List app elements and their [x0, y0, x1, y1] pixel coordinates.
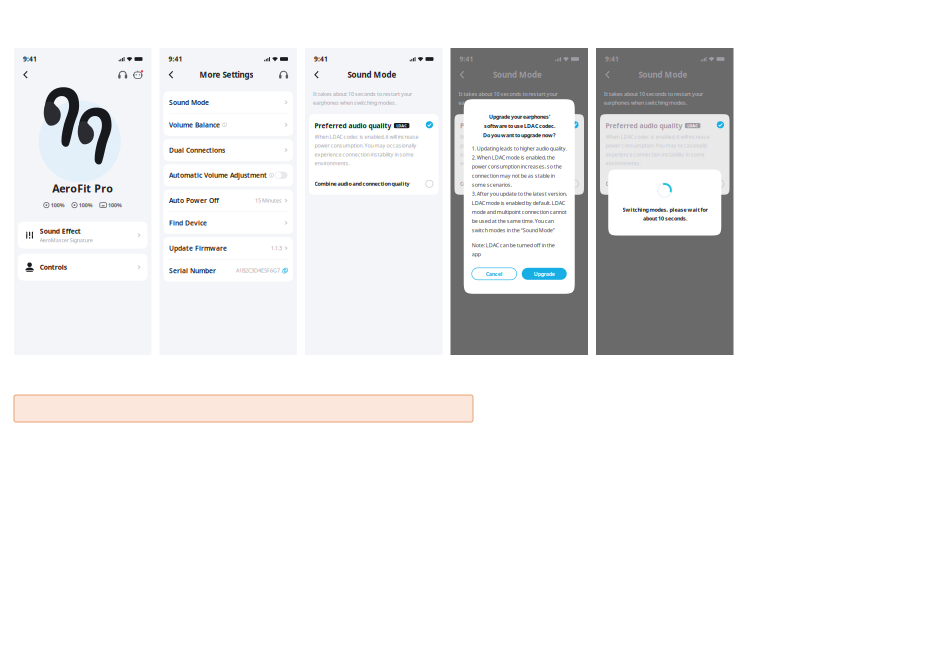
button[interactable]: Automatic Volume Adjustment	[163, 164, 293, 186]
staticText: It takes about 10 seconds to restart you…	[458, 90, 557, 106]
staticText: When LDAC codec is enabled, it will incr…	[314, 133, 418, 167]
staticText: Combine audio and connection quality	[460, 180, 555, 187]
button[interactable]: Combine audio and connection quality	[600, 173, 729, 195]
staticText: Auto Power Off	[169, 196, 219, 205]
staticText: 1.1.3	[271, 245, 282, 252]
staticText: Preferred audio quality	[605, 121, 682, 130]
staticText: Find Device	[169, 218, 207, 227]
button[interactable]: Combine audio and connection quality	[454, 173, 584, 195]
staticText: Switching modes, please wait for about 1…	[622, 206, 707, 222]
button[interactable]: Back	[314, 71, 319, 79]
staticText: 100%	[108, 202, 122, 209]
staticText: Sound Effect	[40, 227, 81, 236]
button[interactable]: Back	[605, 71, 610, 79]
button[interactable]: Serial Number	[163, 259, 293, 281]
staticText: Serial Number	[169, 266, 216, 275]
staticText: LDAC	[396, 123, 407, 128]
button[interactable]: Dual Connections	[163, 139, 293, 161]
button[interactable]: Auto Power Off	[163, 189, 293, 211]
staticText: Preferred audio quality	[314, 121, 391, 130]
staticText: Sound Mode	[493, 69, 542, 80]
staticText: Combine audio and connection quality	[314, 180, 409, 187]
staticText: 9:41	[23, 55, 37, 63]
staticText: Controls	[40, 263, 67, 272]
staticText: Combine audio and connection quality	[605, 180, 700, 187]
staticText: Dual Connections	[169, 146, 225, 154]
button[interactable]: Sound Mode	[163, 91, 293, 113]
button[interactable]: Headphones	[118, 70, 127, 79]
button[interactable]: Back	[168, 71, 174, 79]
button[interactable]: Back	[459, 71, 465, 79]
staticText: LDAC	[542, 123, 553, 128]
staticText: Cancel	[486, 270, 503, 277]
button[interactable]: Back	[23, 71, 28, 79]
staticText: AeroMaster Signature	[40, 236, 93, 244]
staticText: LDAC	[687, 123, 698, 128]
staticText: 9:41	[314, 55, 328, 63]
button[interactable]: Upgrade	[522, 268, 567, 280]
staticText: 9:41	[459, 55, 473, 63]
staticText: 100%	[79, 202, 93, 209]
staticText: 1. Updating leads to higher audio qualit…	[472, 145, 567, 234]
staticText: More Settings	[199, 69, 253, 80]
button[interactable]: Combine audio and connection quality	[309, 173, 438, 195]
button[interactable]: Update Firmware	[163, 237, 293, 259]
staticText: 9:41	[605, 55, 619, 63]
staticText: Upgrade your earphones' software to use …	[483, 113, 556, 139]
staticText: It takes about 10 seconds to restart you…	[604, 90, 703, 106]
staticText: 15 Minutes	[255, 197, 282, 204]
staticText: When LDAC codec is enabled, it will incr…	[460, 133, 564, 167]
staticText: 9:41	[168, 55, 182, 63]
button[interactable]: Cancel	[472, 268, 517, 280]
button[interactable]: Device settings	[133, 70, 142, 79]
staticText: 100%	[51, 202, 65, 209]
staticText: A1B2C3D4E5F6G7	[236, 267, 280, 274]
staticText: Upgrade	[534, 270, 555, 277]
staticText: When LDAC codec is enabled, it will incr…	[605, 133, 709, 167]
button[interactable]: Sound Effect	[18, 222, 147, 249]
button[interactable]: Controls	[18, 254, 147, 281]
button[interactable]: Volume Balance	[163, 114, 293, 136]
staticText: Sound Mode	[347, 69, 396, 80]
staticText: Volume Balance	[169, 120, 220, 129]
staticText: Update Firmware	[169, 244, 227, 253]
staticText: AeroFit Pro	[52, 181, 113, 196]
staticText: Sound Mode	[169, 98, 209, 107]
staticText: Preferred audio quality	[460, 121, 537, 130]
button[interactable]: Find Device	[163, 212, 293, 234]
staticText: Note: LDAC can be turned off in the app	[472, 242, 555, 258]
staticText: Automatic Volume Adjustment	[169, 171, 267, 180]
button[interactable]: Headphones	[279, 70, 288, 79]
staticText: It takes about 10 seconds to restart you…	[313, 90, 412, 106]
staticText: Sound Mode	[638, 69, 687, 80]
